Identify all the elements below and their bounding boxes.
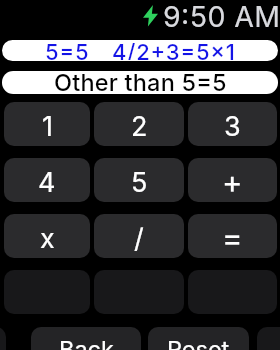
staticText: x <box>40 222 55 255</box>
staticText: 4 <box>38 166 56 199</box>
staticText: = <box>222 219 243 257</box>
staticText: 2 <box>131 110 148 143</box>
staticText: Reset <box>167 335 230 350</box>
staticText: Other than 5=5 <box>54 71 227 91</box>
staticText: 1 <box>42 110 53 143</box>
staticText: + <box>222 163 243 201</box>
staticText: / <box>134 222 144 255</box>
staticText: 4/2+3=5x1 <box>112 40 236 60</box>
staticText: 3 <box>224 110 241 143</box>
staticText: 5 <box>131 166 148 199</box>
staticText: 5=5 <box>45 40 90 60</box>
staticText: 9:50 AM <box>163 0 280 33</box>
staticText: Back <box>59 335 114 350</box>
